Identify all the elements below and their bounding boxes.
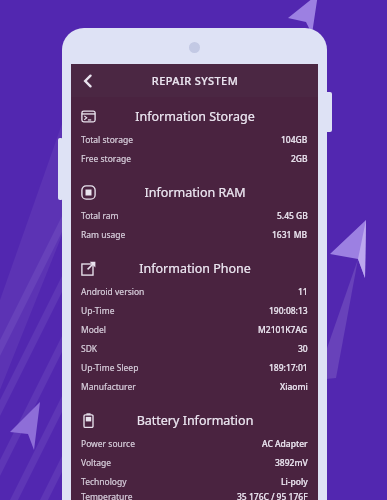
button[interactable]: Information Phone [71, 254, 318, 282]
button[interactable]: Total storage [81, 130, 308, 149]
staticText: Android version [81, 286, 145, 298]
button[interactable]: Ram usage [81, 225, 308, 244]
staticText: 2GB [291, 153, 308, 165]
button[interactable]: Up-Time Sleep [81, 358, 308, 377]
button[interactable]: Free storage [81, 149, 308, 168]
staticText: Information Phone [84, 260, 306, 277]
button[interactable]: Information RAM [71, 178, 318, 206]
button[interactable]: Temperature [81, 491, 308, 500]
staticText: AC Adapter [262, 438, 308, 450]
button[interactable]: Total ram [81, 206, 308, 225]
button[interactable]: Up-Time [81, 301, 308, 320]
button[interactable]: Model [81, 320, 308, 339]
staticText: 190:08:13 [269, 305, 308, 317]
staticText: Up-Time Sleep [81, 362, 139, 374]
staticText: Total storage [81, 134, 133, 146]
staticText: Model [81, 324, 107, 336]
button[interactable]: Android version [81, 282, 308, 301]
button[interactable]: Voltage [81, 453, 308, 472]
staticText: 104GB [281, 134, 308, 146]
staticText: M2101K7AG [258, 324, 308, 336]
staticText: Information RAM [84, 184, 306, 201]
staticText: Xiaomi [280, 381, 308, 393]
staticText: 189:17:01 [269, 362, 308, 374]
staticText: Free storage [81, 153, 131, 165]
staticText: REPAIR SYSTEM [88, 73, 302, 88]
staticText: Up-Time [81, 305, 115, 317]
staticText: 30 [298, 343, 308, 355]
button[interactable]: Technology [81, 472, 308, 491]
staticText: Total ram [81, 210, 119, 222]
button[interactable]: Back [71, 64, 104, 97]
staticText: Power source [81, 438, 135, 450]
staticText: Temperature [81, 491, 133, 500]
staticText: Li-poly [281, 476, 308, 488]
button[interactable]: Power source [81, 434, 308, 453]
staticText: 35 176C / 95 176F [237, 491, 308, 500]
staticText: Manufacturer [81, 381, 136, 393]
button[interactable]: Manufacturer [81, 377, 308, 396]
staticText: 3892mV [275, 457, 308, 469]
button[interactable]: SDK [81, 339, 308, 358]
staticText: Ram usage [81, 229, 126, 241]
staticText: Technology [81, 476, 127, 488]
button[interactable]: Information Storage [71, 102, 318, 130]
button[interactable]: Battery Information [71, 406, 318, 434]
staticText: SDK [81, 343, 98, 355]
staticText: Information Storage [84, 108, 306, 125]
staticText: Battery Information [84, 412, 306, 429]
staticText: 1631 MB [272, 229, 308, 241]
staticText: Voltage [81, 457, 112, 469]
staticText: 5.45 GB [277, 210, 308, 222]
staticText: 11 [298, 286, 308, 298]
